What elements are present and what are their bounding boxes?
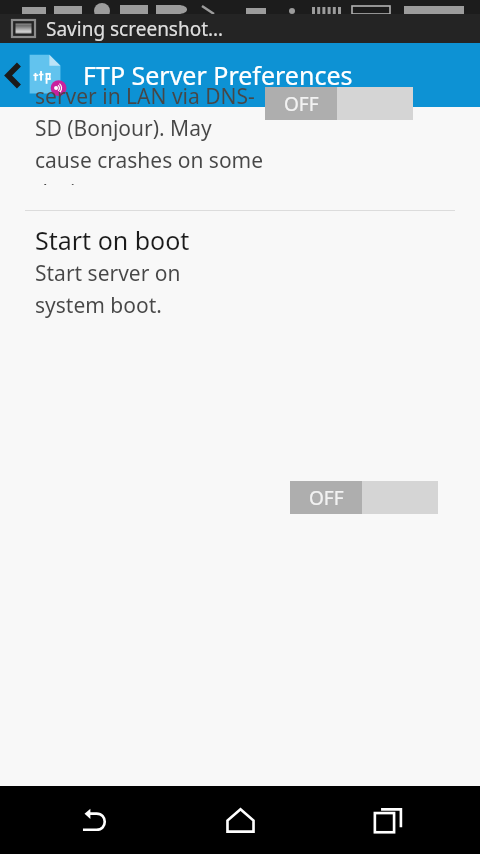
staticText: Start server on system boot.	[35, 259, 230, 319]
staticText: server in LAN via DNS-SD (Bonjour). May …	[35, 82, 265, 185]
button[interactable]: Home	[185, 786, 295, 854]
button[interactable]: Back	[38, 786, 148, 854]
staticText: FTP Server Preferences	[83, 58, 353, 92]
button[interactable]: server in LAN via DNS-SD (Bonjour). May …	[0, 107, 480, 210]
staticText: OFF	[284, 91, 319, 117]
button[interactable]: Recent apps	[333, 786, 443, 854]
staticText: OFF	[309, 485, 344, 511]
button[interactable]: Toggle, off	[290, 481, 438, 514]
button[interactable]: Toggle, off	[265, 87, 413, 120]
button[interactable]: Start on boot	[0, 211, 480, 786]
staticText: Start on boot	[35, 223, 190, 257]
button[interactable]: Navigate up	[0, 43, 27, 107]
staticText: Saving screenshot…	[46, 16, 224, 42]
